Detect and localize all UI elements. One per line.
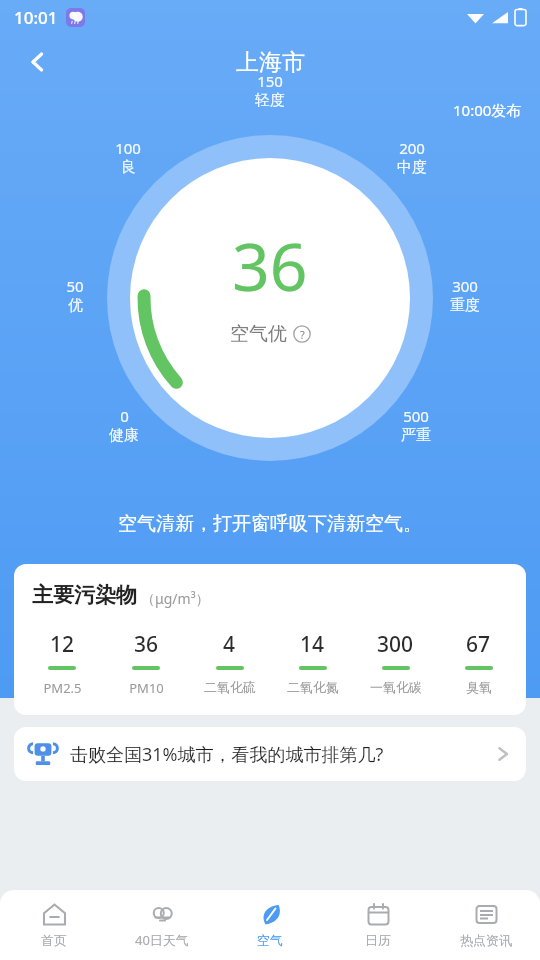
staticText: 重度 [450,296,480,315]
staticText: 300 [452,276,478,296]
staticText: 40日天气 [135,931,189,949]
staticText: 日历 [365,932,391,948]
staticText: 100 [115,138,141,158]
staticText: 健康 [109,426,139,445]
staticText: 良 [121,158,136,177]
staticText: PM10 [129,679,164,697]
button[interactable]: 36 [104,630,188,697]
staticText: 50 [66,276,84,296]
staticText: 300 [377,630,414,659]
staticText: 严重 [401,426,431,445]
staticText: 10:01 [14,6,58,29]
staticText: 二氧化硫 [204,679,256,695]
staticText: 36 [232,220,308,310]
button[interactable]: 300 [354,630,437,695]
staticText: 0 [120,406,129,426]
staticText: 空气优 [230,322,287,346]
staticText: 优 [68,296,83,315]
staticText: 10:00发布 [453,100,522,120]
staticText: 500 [403,406,429,426]
staticText: 一氧化碳 [370,679,422,695]
staticText: PM2.5 [43,679,82,697]
staticText: 67 [466,630,491,659]
staticText: 150 [257,71,283,91]
staticText: 首页 [41,932,67,948]
button[interactable]: 空气 [216,890,324,960]
staticText: 中度 [397,158,427,177]
button[interactable]: 首页 [0,890,108,960]
button[interactable]: 日历 [324,890,432,960]
staticText: 14 [300,630,325,659]
staticText: 二氧化氮 [287,679,339,695]
staticText: 主要污染物 [32,582,137,608]
button[interactable]: 击败全国31%城市，看我的城市排第几? [14,727,526,781]
staticText: 200 [399,138,425,158]
button[interactable]: 4 [188,630,271,695]
staticText: 臭氧 [466,679,492,695]
staticText: 热点资讯 [460,932,512,948]
button[interactable]: 40日天气 [108,890,216,960]
button[interactable]: Back [16,40,60,84]
staticText: 36 [134,630,159,659]
button[interactable]: 14 [271,630,354,695]
button[interactable]: 说明 [293,325,311,343]
button[interactable]: 12 [20,630,104,697]
staticText: 空气清新，打开窗呼吸下清新空气。 [118,512,422,536]
button[interactable]: 热点资讯 [432,890,540,960]
staticText: 空气 [257,932,283,948]
button[interactable]: 67 [437,630,520,695]
staticText: 轻度 [255,91,285,110]
staticText: 12 [50,630,75,659]
staticText: 4 [223,630,236,659]
staticText: 击败全国31%城市，看我的城市排第几? [70,742,486,767]
staticText: ? [300,327,305,342]
staticText: 上海市 [236,48,305,77]
staticText: （μg/m³） [141,589,210,608]
